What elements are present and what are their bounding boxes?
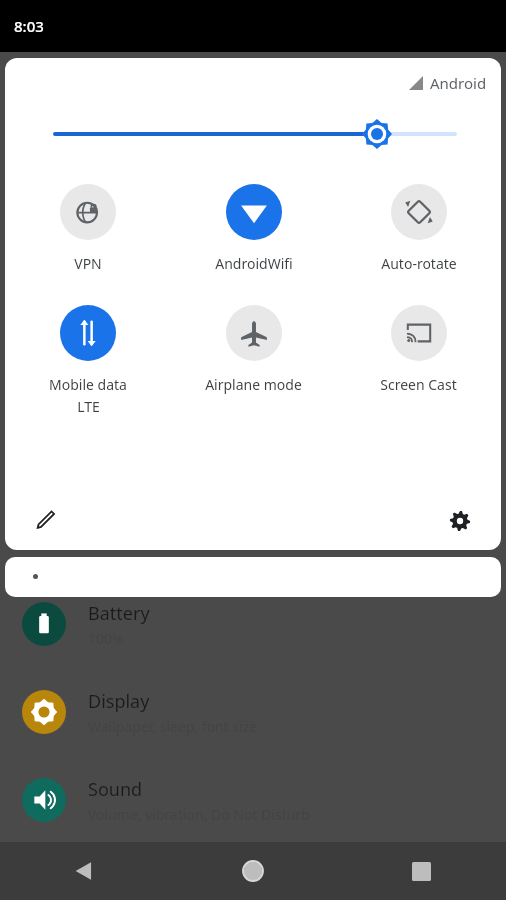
button[interactable] bbox=[5, 557, 501, 597]
button[interactable]: Auto-rotate bbox=[336, 182, 501, 275]
staticText: Display bbox=[88, 689, 150, 714]
button[interactable]: Screen Cast bbox=[336, 303, 501, 396]
staticText: LTE bbox=[77, 397, 100, 416]
button[interactable]: Battery bbox=[0, 596, 506, 652]
button[interactable]: Airplane mode bbox=[171, 303, 336, 396]
button[interactable]: Home bbox=[168, 842, 337, 900]
staticText: Sound bbox=[88, 777, 143, 802]
staticText: Airplane mode bbox=[205, 375, 302, 394]
staticText: 8:03 bbox=[14, 16, 44, 36]
button[interactable]: AndroidWifi bbox=[171, 182, 336, 275]
staticText: AndroidWifi bbox=[215, 254, 293, 273]
staticText: Battery bbox=[88, 601, 150, 626]
button[interactable]: Mobile data bbox=[5, 303, 171, 418]
staticText: Mobile data bbox=[49, 375, 127, 394]
staticText: Auto-rotate bbox=[381, 254, 457, 273]
staticText: Screen Cast bbox=[380, 375, 457, 394]
button[interactable]: Display bbox=[0, 684, 506, 740]
button[interactable]: Edit tiles bbox=[27, 502, 65, 540]
button[interactable]: Back bbox=[0, 842, 168, 900]
button[interactable]: Settings bbox=[441, 502, 479, 540]
button[interactable]: VPN bbox=[5, 182, 171, 275]
button[interactable]: Recents bbox=[337, 842, 506, 900]
button[interactable]: Sound bbox=[0, 772, 506, 828]
staticText: VPN bbox=[74, 254, 102, 273]
staticText: Android bbox=[430, 73, 487, 93]
